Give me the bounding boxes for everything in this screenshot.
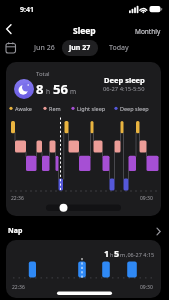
staticText: Deep sleep bbox=[104, 75, 145, 85]
staticText: Light sleep bbox=[77, 105, 106, 112]
staticText: h bbox=[46, 87, 51, 96]
staticText: 1 bbox=[104, 247, 110, 259]
staticText: 5 bbox=[114, 247, 120, 259]
staticText: Nap bbox=[8, 226, 23, 236]
staticText: 09:30 bbox=[140, 284, 153, 291]
staticText: Monthly bbox=[135, 27, 161, 36]
staticText: m bbox=[70, 87, 77, 96]
staticText: 8 bbox=[36, 80, 44, 98]
staticText: Rem bbox=[49, 105, 61, 112]
staticText: Jun 27 bbox=[69, 43, 91, 53]
staticText: 22:36 bbox=[12, 284, 25, 291]
staticText: Today bbox=[109, 43, 129, 53]
staticText: m bbox=[120, 251, 126, 258]
staticText: 56 bbox=[53, 80, 68, 98]
staticText: h bbox=[110, 251, 114, 258]
staticText: Total bbox=[36, 70, 50, 78]
staticText: 09:30 bbox=[140, 195, 153, 202]
staticText: 06-27 4:15-5:50 bbox=[103, 85, 145, 93]
staticText: Sleep bbox=[73, 25, 96, 37]
staticText: 22:36 bbox=[11, 195, 24, 202]
staticText: Awake bbox=[15, 105, 32, 112]
staticText: 9:41 bbox=[20, 5, 34, 15]
staticText: Jun 26 bbox=[34, 43, 55, 53]
staticText: ,06-27 4:15 bbox=[126, 251, 155, 258]
staticText: Deep sleep bbox=[120, 105, 149, 112]
